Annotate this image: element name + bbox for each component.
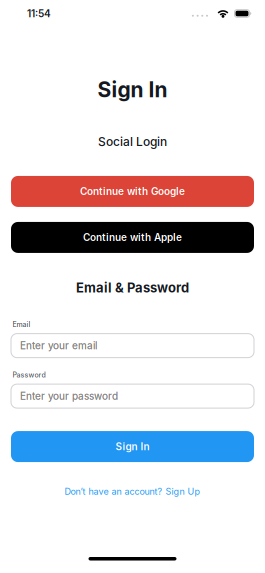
staticText: Email & Password [76,280,189,296]
button[interactable]: Sign In [11,431,254,462]
staticText: Enter your email [20,340,97,352]
staticText: Social Login [98,134,167,149]
staticText: Don’t have an account? Sign Up [64,486,200,497]
button[interactable]: Continue with Google [11,176,254,207]
button[interactable]: Continue with Apple [11,222,254,253]
textField[interactable]: Enter your password [20,390,254,402]
staticText: Continue with Apple [83,231,182,243]
staticText: Sign In [97,77,167,102]
staticText: Password [12,371,45,379]
staticText: Email [12,320,30,329]
staticText: Continue with Google [80,185,185,197]
staticText: Enter your password [20,390,118,402]
staticText: Enter your password [20,390,118,402]
button[interactable]: Don’t have an account? Sign Up [64,486,200,497]
staticText: Enter your email [20,340,97,352]
staticText: Sign In [115,440,149,453]
textField[interactable]: Enter your email [20,340,254,352]
staticText: 11:54 [27,7,51,20]
